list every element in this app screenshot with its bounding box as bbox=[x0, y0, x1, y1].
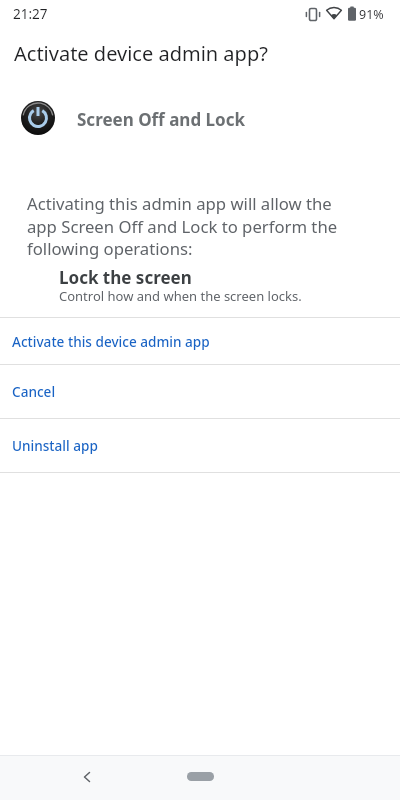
staticText: Uninstall app bbox=[12, 436, 98, 455]
staticText: Cancel bbox=[12, 382, 56, 401]
button[interactable]: Activate this device admin app bbox=[0, 318, 400, 364]
button[interactable] bbox=[75, 765, 99, 789]
staticText: 21:27 bbox=[13, 5, 48, 23]
staticText: Lock the screen bbox=[59, 266, 192, 289]
staticText: Control how and when the screen locks. bbox=[59, 287, 302, 305]
button[interactable]: Cancel bbox=[0, 365, 400, 418]
staticText: 91% bbox=[359, 6, 384, 23]
button[interactable] bbox=[187, 772, 214, 781]
staticText: Activate device admin app? bbox=[14, 40, 268, 67]
button[interactable]: Uninstall app bbox=[0, 419, 400, 472]
staticText: Activate this device admin app bbox=[12, 332, 210, 351]
staticText: Activating this admin app will allow the… bbox=[27, 192, 338, 260]
staticText: Screen Off and Lock bbox=[77, 108, 245, 131]
